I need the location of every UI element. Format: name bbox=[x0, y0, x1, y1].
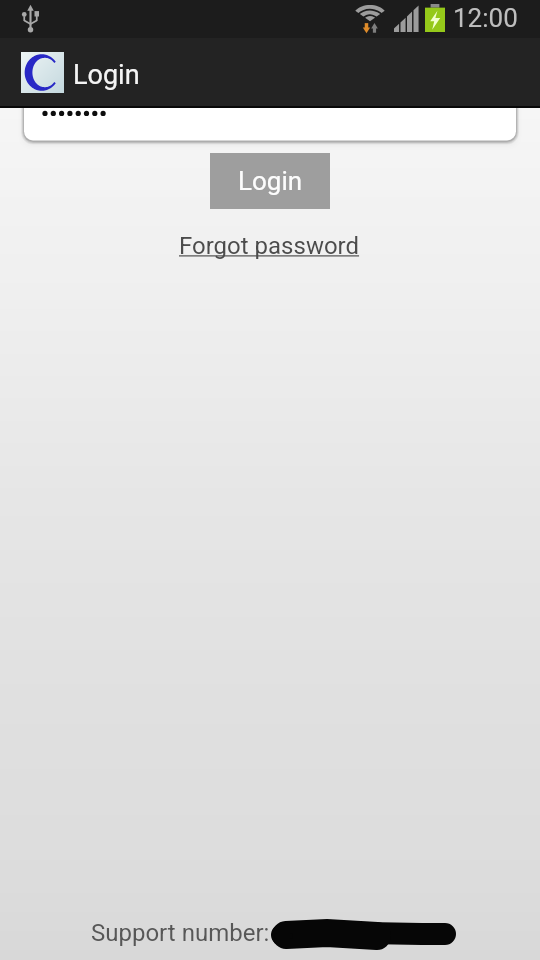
staticText: Forgot password bbox=[179, 232, 360, 260]
button[interactable]: Login bbox=[210, 153, 330, 209]
staticText: Support number: bbox=[91, 919, 270, 947]
staticText: 12:00 bbox=[453, 3, 518, 33]
button[interactable]: Forgot password bbox=[175, 230, 364, 262]
staticText: Login bbox=[238, 166, 303, 196]
staticText: Login bbox=[73, 59, 140, 91]
